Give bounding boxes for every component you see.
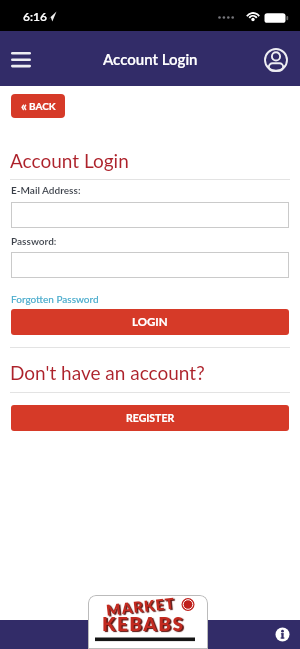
button[interactable]	[262, 46, 290, 74]
button[interactable]: REGISTER	[11, 405, 289, 431]
staticText: Password:	[11, 235, 57, 247]
staticText: E-Mail Address:	[11, 184, 81, 196]
staticText: REGISTER	[126, 412, 175, 425]
staticText: 6:16	[23, 9, 47, 23]
staticText: Account Login	[10, 149, 129, 172]
staticText: KEBABS	[102, 612, 185, 635]
staticText: BACK	[29, 100, 56, 112]
button[interactable]	[5, 42, 37, 74]
staticText: «	[21, 98, 27, 114]
staticText: Account Login	[103, 50, 198, 68]
staticText: LOGIN	[132, 315, 168, 329]
button[interactable]	[11, 252, 289, 278]
button[interactable]	[11, 202, 289, 228]
staticText: MARKET	[105, 595, 177, 619]
button[interactable]: Forgotten Password	[11, 293, 99, 305]
button[interactable]: LOGIN	[11, 309, 289, 335]
button[interactable]	[275, 627, 290, 642]
staticText: Don't have an account?	[10, 361, 205, 384]
button[interactable]: «	[11, 94, 65, 118]
